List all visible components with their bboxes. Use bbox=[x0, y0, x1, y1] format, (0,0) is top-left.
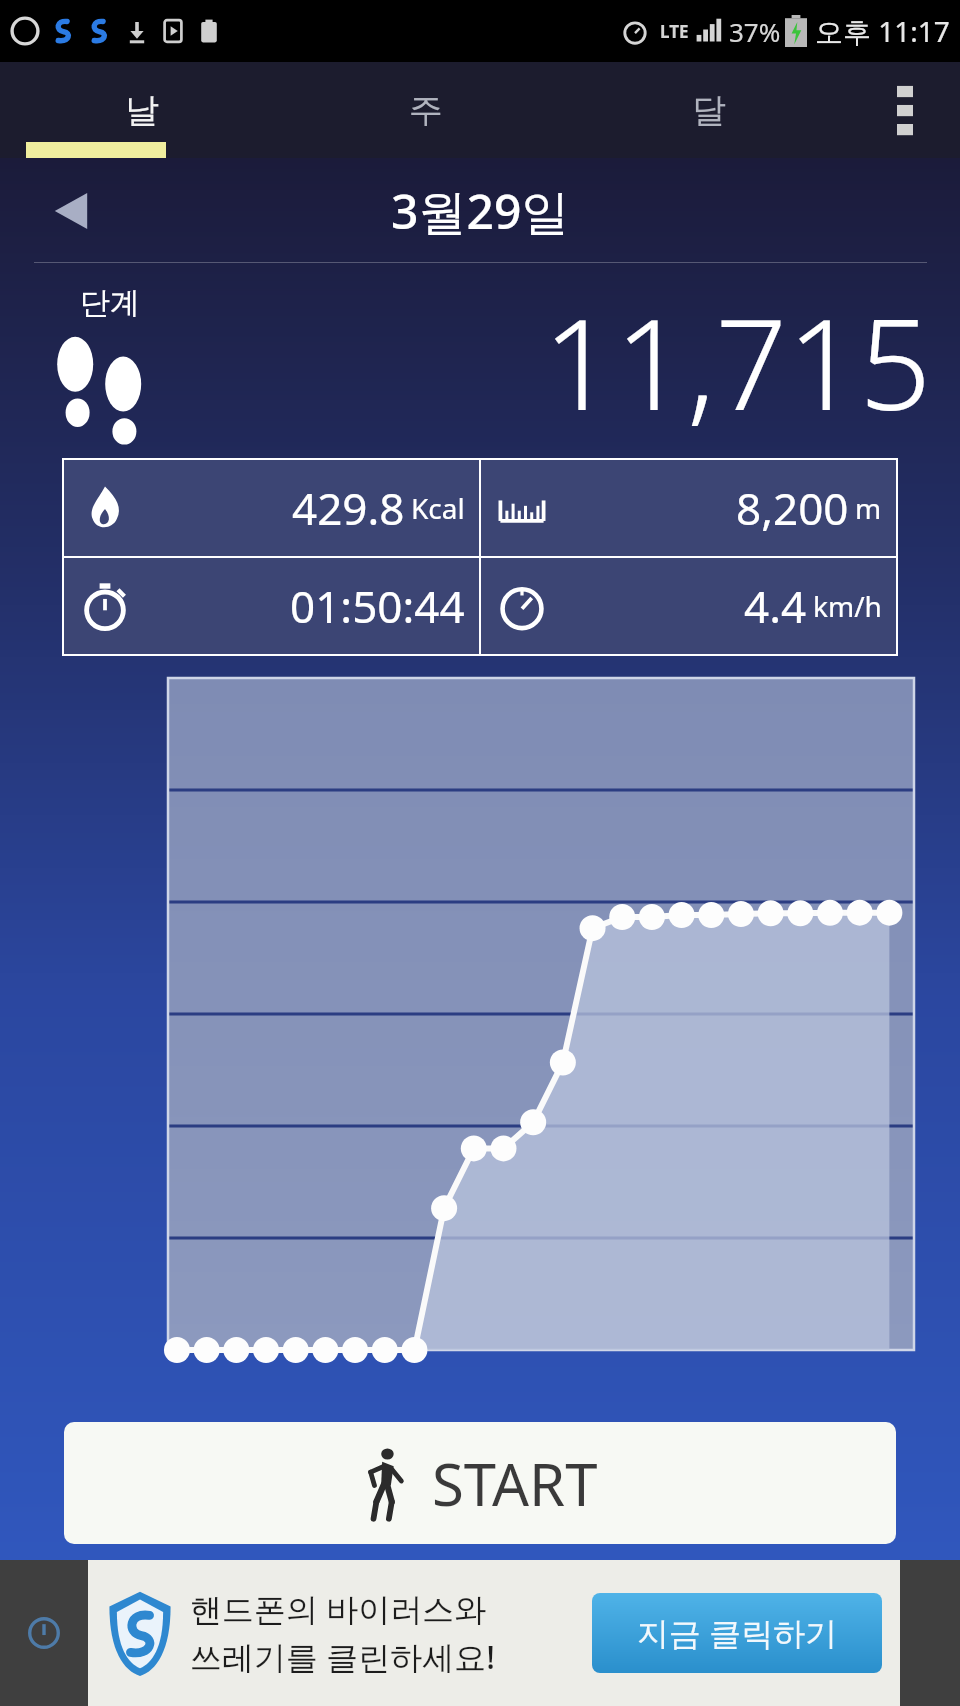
staticText: 달 bbox=[692, 89, 726, 132]
staticText: LTE bbox=[660, 20, 689, 43]
staticText: 3월29일 bbox=[391, 178, 570, 244]
staticText: 429.8 bbox=[292, 478, 405, 538]
button[interactable]: 주 bbox=[284, 62, 567, 158]
staticText: km/h bbox=[813, 587, 882, 625]
button[interactable]: START bbox=[64, 1422, 896, 1544]
button[interactable]: 429.8 bbox=[64, 460, 479, 556]
staticText: 핸드폰의 바이러스와 bbox=[190, 1587, 487, 1631]
button[interactable]: 날 bbox=[0, 62, 284, 158]
staticText: 01:50:44 bbox=[290, 576, 465, 636]
staticText: 11,715 bbox=[543, 275, 932, 447]
button[interactable]: 8,200 bbox=[481, 460, 896, 556]
staticText: Kcal bbox=[411, 489, 465, 527]
button[interactable]: 4.4 bbox=[481, 558, 896, 654]
button[interactable]: 지금 클릭하기 bbox=[592, 1593, 882, 1673]
button[interactable]: More options bbox=[850, 62, 960, 158]
staticText: 단계 bbox=[80, 284, 140, 322]
staticText: START bbox=[432, 1444, 598, 1523]
button[interactable]: 핸드폰의 바이러스와 bbox=[88, 1560, 900, 1706]
staticText: m bbox=[855, 489, 882, 527]
button[interactable]: 달 bbox=[567, 62, 850, 158]
staticText: 주 bbox=[409, 89, 443, 132]
staticText: 37% bbox=[729, 14, 781, 49]
staticText: 4.4 bbox=[744, 576, 807, 636]
button[interactable]: 01:50:44 bbox=[64, 558, 479, 654]
staticText: 날 bbox=[125, 89, 159, 132]
staticText: 8,200 bbox=[736, 478, 849, 538]
staticText: 쓰레기를 클린하세요! bbox=[190, 1635, 496, 1679]
button[interactable]: Previous day bbox=[44, 181, 104, 241]
staticText: 지금 클릭하기 bbox=[637, 1611, 838, 1655]
staticText: 오후 11:17 bbox=[815, 12, 950, 50]
